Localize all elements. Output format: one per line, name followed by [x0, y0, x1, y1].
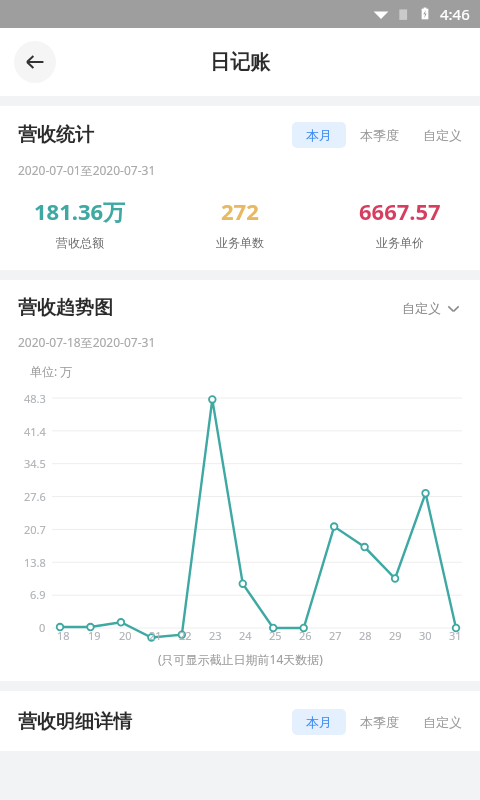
- staticText: 营收趋势图: [18, 296, 113, 320]
- staticText: 27.6: [24, 489, 46, 504]
- button[interactable]: 自定义: [398, 296, 464, 320]
- staticText: 6.9: [30, 587, 46, 602]
- staticText: 本月: [306, 127, 332, 143]
- staticText: 业务单数: [216, 235, 264, 250]
- staticText: 本季度: [360, 127, 399, 143]
- button[interactable]: 本月: [292, 122, 346, 148]
- staticText: 18: [57, 628, 70, 643]
- staticText: 2020-07-18至2020-07-31: [18, 334, 156, 350]
- staticText: 2020-07-01至2020-07-31: [18, 162, 156, 178]
- staticText: 业务单价: [376, 235, 424, 250]
- staticText: 272: [221, 196, 259, 226]
- staticText: 27: [329, 628, 342, 643]
- staticText: 本季度: [360, 714, 399, 730]
- staticText: 自定义: [423, 127, 462, 143]
- staticText: 6667.57: [359, 196, 441, 226]
- staticText: 自定义: [423, 714, 462, 730]
- staticText: 25: [269, 628, 282, 643]
- staticText: 营收总额: [56, 235, 104, 250]
- staticText: 28: [359, 628, 372, 643]
- staticText: 13.8: [24, 555, 46, 570]
- button[interactable]: 自定义: [413, 122, 466, 148]
- button[interactable]: 本月: [292, 709, 346, 735]
- staticText: 营收明细详情: [18, 710, 132, 734]
- staticText: (只可显示截止日期前14天数据): [158, 651, 323, 667]
- staticText: 48.3: [24, 391, 46, 406]
- staticText: 29: [389, 628, 402, 643]
- staticText: 30: [419, 628, 432, 643]
- staticText: 41.4: [24, 424, 46, 439]
- staticText: 23: [209, 628, 222, 643]
- button[interactable]: 自定义: [413, 709, 466, 735]
- staticText: 24: [239, 628, 252, 643]
- staticText: 20: [119, 628, 132, 643]
- staticText: 单位: 万: [30, 363, 73, 379]
- staticText: 34.5: [24, 456, 46, 471]
- staticText: 日记账: [210, 50, 270, 75]
- staticText: 31: [449, 628, 462, 643]
- staticText: 19: [88, 628, 101, 643]
- staticText: 26: [299, 628, 312, 643]
- staticText: 自定义: [402, 300, 441, 316]
- staticText: 181.36万: [34, 196, 126, 226]
- staticText: 营收统计: [18, 123, 94, 147]
- staticText: 21: [149, 628, 162, 643]
- staticText: 本月: [306, 714, 332, 730]
- staticText: 20.7: [24, 522, 46, 537]
- staticText: 4:46: [440, 4, 470, 24]
- staticText: 0: [39, 620, 46, 635]
- button[interactable]: 本季度: [346, 709, 413, 735]
- button[interactable]: Back: [14, 41, 56, 83]
- staticText: 22: [179, 628, 192, 643]
- button[interactable]: 本季度: [346, 122, 413, 148]
